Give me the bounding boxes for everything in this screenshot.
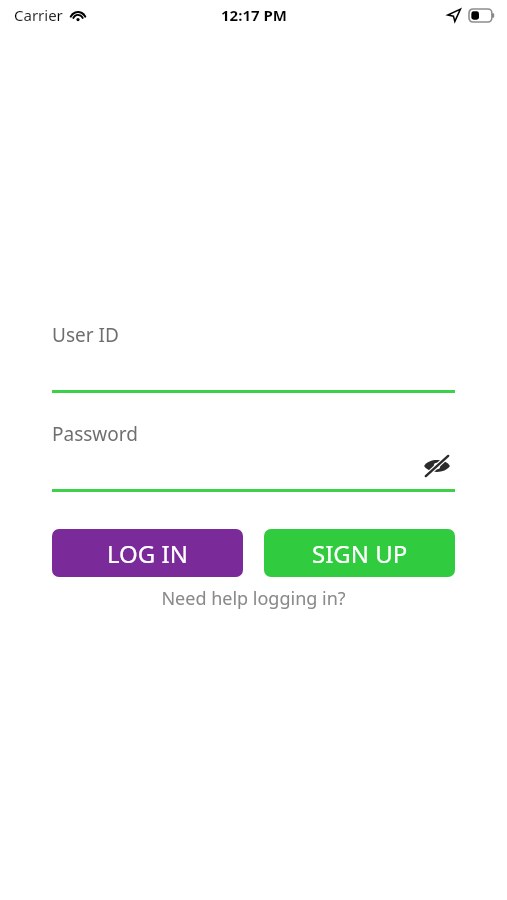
button[interactable]: LOG IN [52, 529, 243, 577]
staticText: Password [52, 421, 138, 447]
staticText: LOG IN [107, 537, 188, 570]
button[interactable]: Show password [419, 448, 455, 484]
staticText: 12:17 PM [221, 5, 287, 25]
button[interactable]: SIGN UP [264, 529, 455, 577]
staticText: Need help logging in? [161, 586, 346, 611]
button[interactable]: Need help logging in? [52, 586, 455, 611]
staticText: Carrier [14, 5, 63, 25]
staticText: SIGN UP [312, 537, 408, 570]
button[interactable]: Password [52, 415, 455, 492]
staticText: User ID [52, 322, 119, 348]
button[interactable]: User ID [52, 316, 455, 393]
